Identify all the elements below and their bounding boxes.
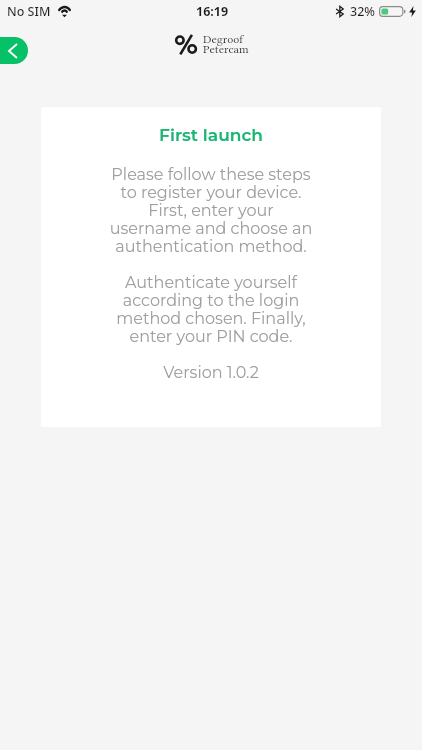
staticText: First launch: [159, 125, 263, 146]
staticText: 32%: [350, 3, 375, 20]
button[interactable]: Back: [0, 37, 28, 64]
staticText: 16:19: [196, 3, 229, 20]
staticText: No SIM: [7, 3, 51, 20]
staticText: Degroof Petercam: [203, 32, 249, 56]
staticText: Please follow these steps to register yo…: [41, 165, 381, 382]
